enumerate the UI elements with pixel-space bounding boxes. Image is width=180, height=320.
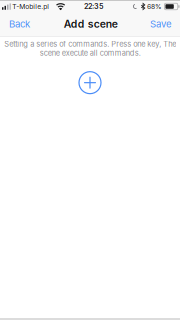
staticText: Setting a series of commands. Press one …	[4, 40, 176, 58]
staticText: 68%	[147, 2, 162, 11]
staticText: Add scene	[64, 18, 118, 30]
button[interactable]: Add command	[75, 68, 105, 98]
button[interactable]: Back	[0, 12, 37, 36]
button[interactable]: Save	[143, 12, 180, 36]
staticText: Save	[150, 18, 172, 30]
staticText: T-Mobile.pl	[12, 2, 49, 11]
staticText: Back	[9, 18, 30, 30]
staticText: 22:35	[84, 2, 104, 11]
